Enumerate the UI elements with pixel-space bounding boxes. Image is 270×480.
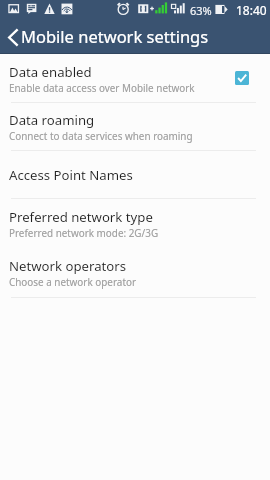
staticText: Access Point Names — [9, 166, 133, 184]
button[interactable]: Data enabled checkbox — [235, 71, 249, 85]
staticText: 18:40 — [236, 2, 267, 18]
button[interactable]: Preferred network type — [0, 199, 270, 248]
staticText: Preferred network type — [9, 208, 153, 226]
staticText: Preferred network mode: 2G/3G — [9, 226, 159, 239]
staticText: Network operators — [9, 257, 127, 275]
button[interactable]: Navigate up — [0, 18, 21, 54]
staticText: Data enabled — [9, 63, 92, 81]
staticText: Mobile network settings — [21, 25, 209, 47]
staticText: Enable data access over Mobile network — [9, 81, 195, 94]
button[interactable]: Data roaming — [0, 103, 270, 150]
staticText: 63% — [190, 3, 212, 18]
staticText: Connect to data services when roaming — [9, 129, 193, 142]
button[interactable]: Network operators — [0, 248, 270, 297]
staticText: Choose a network operator — [9, 275, 137, 288]
staticText: Data roaming — [9, 111, 95, 129]
button[interactable]: Access Point Names — [0, 151, 270, 198]
button[interactable]: Data enabled — [0, 54, 270, 102]
